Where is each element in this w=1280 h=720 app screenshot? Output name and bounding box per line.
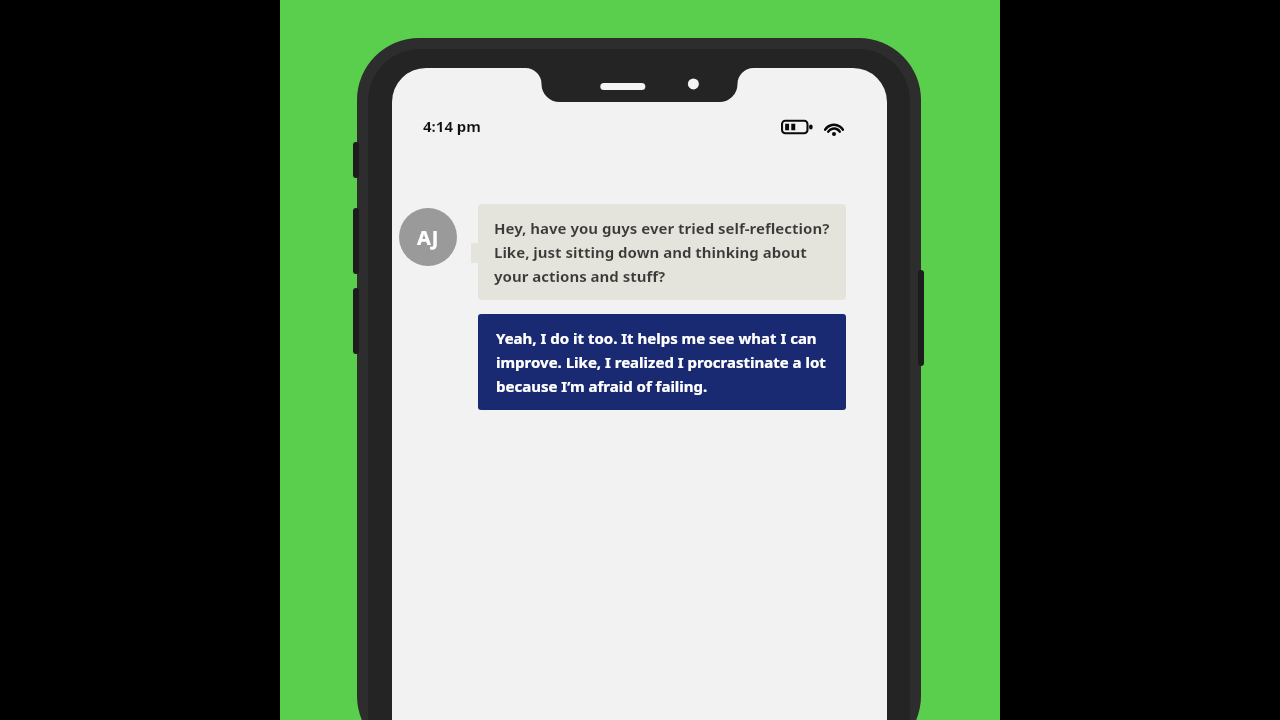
staticText: Hey, have you guys ever tried self-refle… xyxy=(494,218,830,286)
button[interactable]: AJ xyxy=(399,208,457,266)
button[interactable]: Hey, have you guys ever tried self-refle… xyxy=(478,204,846,300)
staticText: AJ xyxy=(417,224,439,251)
button[interactable]: Yeah, I do it too. It helps me see what … xyxy=(478,314,846,410)
staticText: Yeah, I do it too. It helps me see what … xyxy=(496,328,830,396)
staticText: 4:14 pm xyxy=(423,116,481,136)
